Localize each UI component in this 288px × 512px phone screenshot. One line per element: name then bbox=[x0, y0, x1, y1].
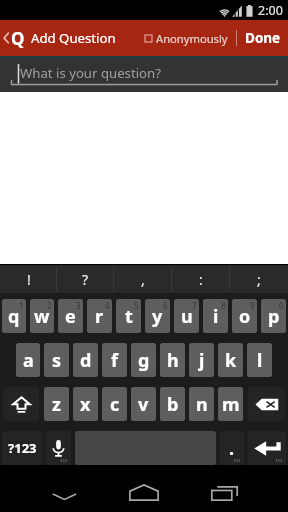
staticText: h bbox=[167, 348, 179, 373]
button[interactable]: e bbox=[58, 299, 83, 333]
button[interactable]: Recent apps bbox=[196, 473, 252, 512]
button[interactable]: Backspace bbox=[248, 387, 285, 421]
button[interactable]: d bbox=[73, 343, 98, 377]
staticText: ?123 bbox=[8, 439, 37, 457]
staticText: s bbox=[52, 348, 62, 373]
button[interactable]: l bbox=[247, 343, 272, 377]
staticText: v bbox=[138, 392, 149, 417]
button[interactable]: j bbox=[189, 343, 214, 377]
button[interactable]: s bbox=[44, 343, 69, 377]
staticText: t bbox=[125, 304, 133, 329]
staticText: 8 bbox=[221, 300, 226, 311]
button[interactable]: . bbox=[220, 431, 244, 465]
staticText: d bbox=[80, 348, 92, 373]
button[interactable]: ; bbox=[230, 265, 288, 293]
button[interactable]: Anonymously bbox=[143, 20, 228, 56]
button[interactable]: g bbox=[131, 343, 156, 377]
button[interactable]: a bbox=[16, 343, 40, 377]
button[interactable]: Back to Q bbox=[0, 20, 27, 56]
staticText: 2:00 bbox=[258, 2, 283, 19]
button[interactable]: p bbox=[261, 299, 286, 333]
button[interactable]: i bbox=[203, 299, 228, 333]
button[interactable]: w bbox=[30, 299, 54, 333]
staticText: n bbox=[196, 392, 208, 417]
button[interactable]: m bbox=[218, 387, 243, 421]
button[interactable]: Add Question bbox=[31, 29, 116, 47]
staticText: Done bbox=[245, 29, 281, 47]
button[interactable]: b bbox=[160, 387, 185, 421]
staticText: 6 bbox=[163, 300, 168, 311]
button[interactable]: Hide keyboard bbox=[36, 473, 92, 512]
button[interactable]: What is your question? bbox=[0, 58, 288, 92]
button[interactable]: ? bbox=[57, 265, 114, 293]
button[interactable]: v bbox=[131, 387, 156, 421]
staticText: , bbox=[141, 270, 145, 289]
staticText: g bbox=[138, 348, 150, 373]
button[interactable]: Shift bbox=[3, 387, 39, 421]
staticText: e bbox=[65, 304, 76, 329]
button[interactable]: : bbox=[172, 265, 230, 293]
button[interactable]: q bbox=[2, 299, 26, 333]
button[interactable]: u bbox=[174, 299, 199, 333]
staticText: ? bbox=[82, 270, 89, 289]
staticText: Anonymously bbox=[156, 31, 228, 46]
button[interactable]: ?123 bbox=[2, 431, 42, 465]
staticText: x bbox=[80, 392, 91, 417]
staticText: a bbox=[23, 348, 34, 373]
staticText: ; bbox=[257, 270, 261, 289]
staticText: m bbox=[222, 392, 240, 417]
staticText: b bbox=[167, 392, 179, 417]
button[interactable]: k bbox=[218, 343, 243, 377]
staticText: 3 bbox=[76, 300, 81, 311]
staticText: r bbox=[95, 304, 104, 329]
staticText: o bbox=[239, 304, 251, 329]
button[interactable]: x bbox=[73, 387, 98, 421]
staticText: 4 bbox=[105, 300, 110, 311]
button[interactable]: o bbox=[232, 299, 257, 333]
staticText: u bbox=[181, 304, 193, 329]
staticText: 1 bbox=[19, 300, 24, 311]
staticText: 0 bbox=[279, 300, 284, 311]
button[interactable]: Enter bbox=[248, 431, 286, 465]
button[interactable]: Home bbox=[116, 473, 172, 512]
staticText: . bbox=[229, 436, 235, 461]
staticText: i bbox=[213, 304, 219, 329]
staticText: c bbox=[110, 392, 120, 417]
button[interactable]: t bbox=[116, 299, 141, 333]
staticText: 9 bbox=[250, 300, 255, 311]
staticText: ! bbox=[27, 270, 31, 289]
button[interactable]: , bbox=[114, 265, 172, 293]
button[interactable]: r bbox=[87, 299, 112, 333]
staticText: l bbox=[257, 348, 263, 373]
button[interactable]: y bbox=[145, 299, 170, 333]
staticText: 7 bbox=[192, 300, 197, 311]
staticText: Q bbox=[11, 27, 25, 50]
staticText: j bbox=[199, 348, 205, 373]
button[interactable]: f bbox=[102, 343, 127, 377]
button[interactable]: n bbox=[189, 387, 214, 421]
button[interactable]: c bbox=[102, 387, 127, 421]
button[interactable]: Voice input bbox=[46, 431, 71, 465]
staticText: k bbox=[225, 348, 237, 373]
staticText: : bbox=[199, 270, 203, 289]
button[interactable]: z bbox=[44, 387, 69, 421]
staticText: q bbox=[8, 304, 20, 329]
staticText: f bbox=[111, 348, 118, 373]
staticText: y bbox=[152, 304, 163, 329]
staticText: What is your question? bbox=[20, 64, 161, 82]
staticText: p bbox=[268, 304, 280, 329]
staticText: z bbox=[52, 392, 61, 417]
staticText: 5 bbox=[134, 300, 139, 311]
button[interactable]: Done bbox=[237, 20, 288, 56]
button[interactable]: ! bbox=[0, 265, 57, 293]
staticText: 2 bbox=[47, 300, 52, 311]
staticText: w bbox=[34, 304, 50, 329]
button[interactable]: h bbox=[160, 343, 185, 377]
